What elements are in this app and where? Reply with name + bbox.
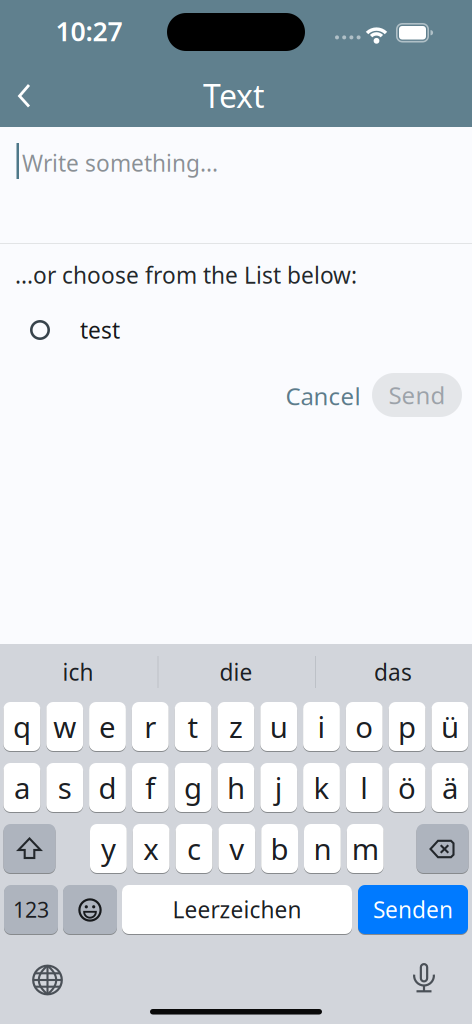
button[interactable]: 123 [4, 885, 58, 934]
button[interactable]: e [89, 702, 126, 751]
button[interactable]: q [3, 702, 40, 751]
button[interactable]: Delete [416, 824, 468, 873]
staticText: d [98, 768, 116, 807]
staticText: r [144, 707, 156, 746]
button[interactable]: ö [389, 763, 425, 812]
staticText: f [145, 768, 155, 807]
staticText: u [270, 707, 288, 746]
button[interactable]: Shift [3, 824, 55, 873]
staticText: Write something... [22, 148, 218, 178]
staticText: l [360, 768, 368, 807]
button[interactable]: r [132, 702, 169, 751]
button[interactable]: t [175, 702, 211, 751]
staticText: p [398, 707, 416, 746]
staticText: b [271, 829, 289, 868]
button[interactable]: v [218, 824, 255, 873]
staticText: Cancel [285, 380, 360, 412]
staticText: o [355, 707, 373, 746]
button[interactable]: y [90, 824, 127, 873]
staticText: ü [441, 707, 459, 746]
staticText: n [313, 829, 331, 868]
button[interactable]: j [260, 763, 297, 812]
staticText: 10:27 [55, 13, 122, 49]
staticText: k [313, 768, 329, 807]
staticText: v [229, 829, 244, 868]
button[interactable]: ich [3, 652, 153, 692]
staticText: i [317, 707, 325, 746]
staticText: y [101, 829, 116, 868]
button[interactable]: b [261, 824, 298, 873]
button[interactable]: f [132, 763, 169, 812]
button[interactable]: ü [431, 702, 468, 751]
button[interactable]: ä [431, 763, 468, 812]
button[interactable]: n [304, 824, 341, 873]
staticText: ich [62, 657, 93, 687]
staticText: z [229, 707, 243, 746]
staticText: ...or choose from the List below: [15, 260, 357, 290]
staticText: Senden [373, 894, 453, 924]
button[interactable]: Emoji [63, 885, 117, 934]
button[interactable]: x [133, 824, 170, 873]
button[interactable]: das [318, 652, 468, 692]
staticText: m [352, 829, 379, 868]
staticText: test [80, 315, 120, 345]
staticText: das [374, 657, 412, 687]
staticText: ö [398, 768, 416, 807]
staticText: h [227, 768, 245, 807]
button[interactable]: i [303, 702, 340, 751]
staticText: die [219, 657, 252, 687]
button[interactable]: die [161, 652, 311, 692]
staticText: Text [203, 74, 265, 117]
staticText: q [13, 707, 31, 746]
button[interactable]: Send [372, 373, 462, 417]
button[interactable]: z [217, 702, 254, 751]
button[interactable]: g [175, 763, 211, 812]
button[interactable]: c [176, 824, 212, 873]
staticText: a [14, 768, 30, 807]
staticText: Leerzeichen [172, 894, 301, 924]
button[interactable]: m [347, 824, 384, 873]
button[interactable]: Cancel [283, 374, 363, 418]
staticText: Send [388, 379, 445, 411]
button[interactable]: w [46, 702, 83, 751]
staticText: j [275, 768, 283, 807]
staticText: ä [442, 768, 458, 807]
staticText: g [184, 768, 202, 807]
button[interactable]: u [260, 702, 297, 751]
button[interactable]: p [389, 702, 425, 751]
button[interactable]: h [217, 763, 254, 812]
staticText: t [188, 707, 199, 746]
button[interactable]: Senden [358, 885, 468, 934]
button[interactable]: Next keyboard [29, 962, 65, 998]
staticText: e [99, 707, 116, 746]
staticText: w [53, 707, 76, 746]
button[interactable]: k [303, 763, 340, 812]
button[interactable]: a [3, 763, 40, 812]
button[interactable]: d [89, 763, 126, 812]
staticText: s [58, 768, 72, 807]
staticText: 123 [13, 895, 49, 924]
button[interactable]: Leerzeichen [122, 885, 352, 934]
staticText: x [143, 829, 159, 868]
button[interactable]: test [30, 312, 230, 348]
button[interactable]: Back [6, 74, 50, 118]
button[interactable]: s [46, 763, 83, 812]
staticText: c [187, 829, 201, 868]
button[interactable]: o [346, 702, 383, 751]
button[interactable]: Dictate [402, 949, 446, 995]
button[interactable]: l [346, 763, 383, 812]
